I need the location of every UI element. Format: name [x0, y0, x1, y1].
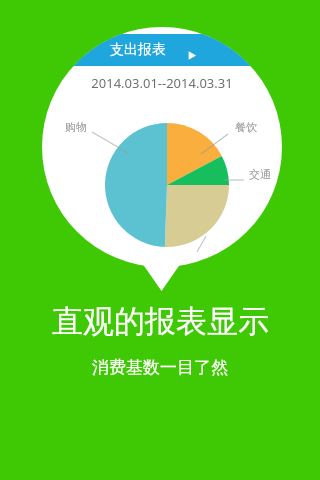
staticText: 餐饮 — [235, 120, 257, 134]
button[interactable]: 支出报表 — [110, 38, 214, 62]
staticText: 交通 — [249, 167, 271, 181]
button[interactable]: 购物 — [58, 119, 94, 135]
staticText: 购物 — [65, 120, 87, 134]
staticText: 支出报表 — [110, 41, 166, 59]
other: More — [186, 49, 199, 62]
staticText: 2014.03.01--2014.03.31 — [91, 74, 233, 92]
staticText: 消费基数一目了然 — [92, 357, 228, 378]
staticText: 直观的报表显示 — [52, 302, 269, 341]
button[interactable]: 交通 — [242, 166, 278, 182]
button[interactable]: 餐饮 — [228, 119, 264, 135]
